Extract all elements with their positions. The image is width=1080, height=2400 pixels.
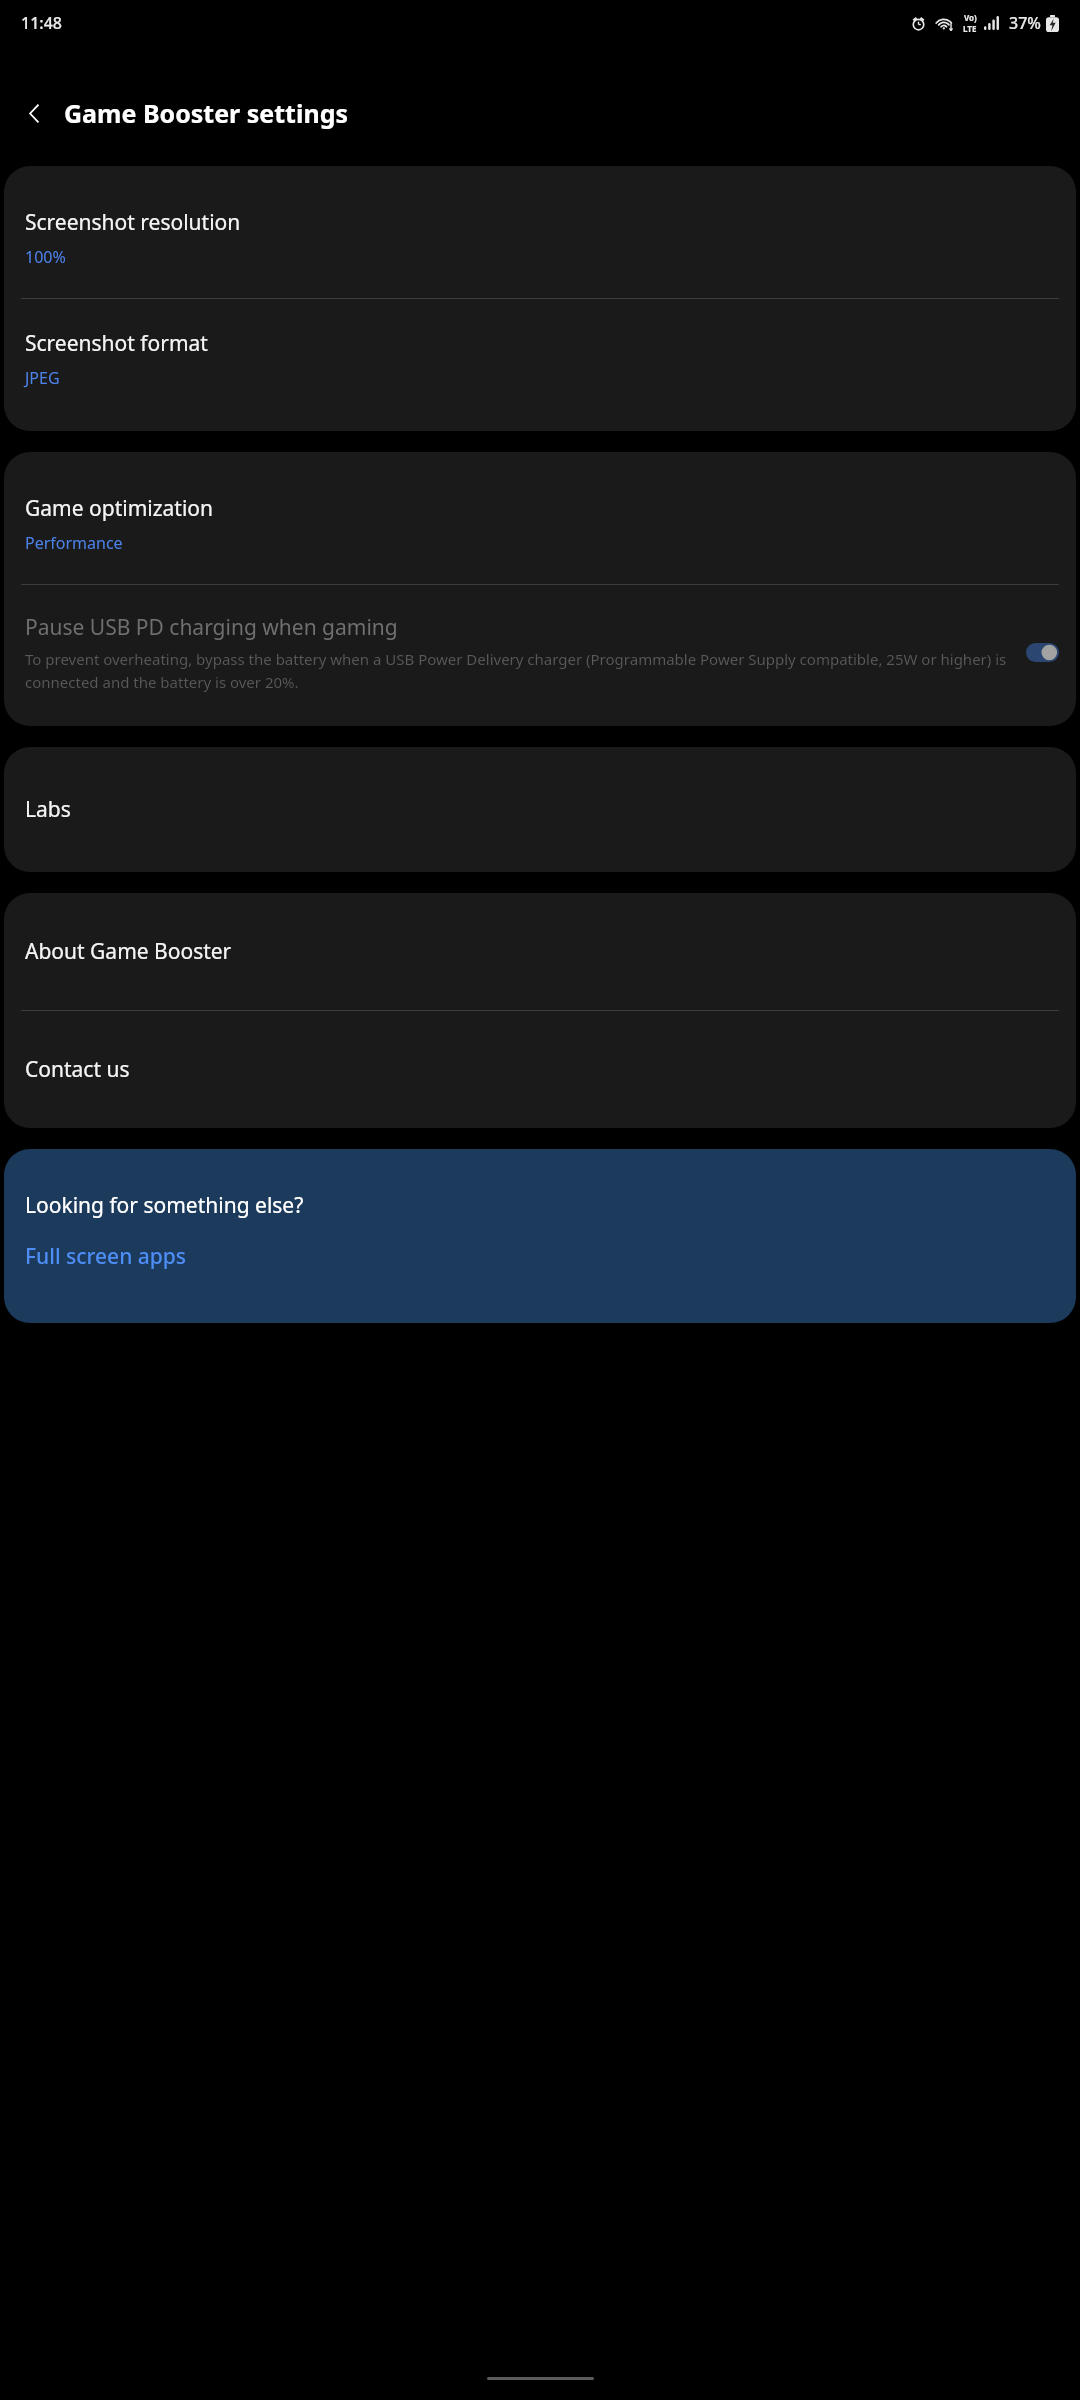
button[interactable]: Game optimization (4, 452, 1076, 584)
staticText: Performance (25, 532, 123, 554)
staticText: Game optimization (25, 494, 214, 523)
button[interactable]: Pause USB PD charging when gaming (4, 585, 1076, 726)
button[interactable]: Looking for something else? (4, 1149, 1076, 1323)
button[interactable]: Labs (4, 747, 1076, 872)
button[interactable]: About Game Booster (4, 893, 1076, 1010)
staticText: JPEG (25, 367, 60, 389)
staticText: Labs (25, 795, 71, 824)
staticText: About Game Booster (25, 937, 232, 966)
button[interactable]: Contact us (4, 1011, 1076, 1128)
staticText: Full screen apps (25, 1242, 187, 1271)
staticText: Vo) (964, 12, 977, 23)
button[interactable]: Screenshot format (4, 299, 1076, 431)
staticText: 11:48 (21, 12, 62, 34)
button[interactable]: Screenshot resolution (4, 166, 1076, 298)
button[interactable]: Pause USB PD charging when gaming (1026, 643, 1059, 662)
staticText: Screenshot format (25, 329, 208, 358)
staticText: 100% (25, 246, 66, 268)
staticText: 37% (1009, 12, 1041, 34)
staticText: Game Booster settings (64, 96, 349, 130)
staticText: LTE (963, 23, 977, 34)
staticText: Contact us (25, 1055, 130, 1084)
staticText: To prevent overheating, bypass the batte… (25, 649, 1012, 692)
button[interactable]: Back (12, 91, 56, 135)
staticText: Pause USB PD charging when gaming (25, 613, 398, 642)
staticText: Looking for something else? (25, 1191, 304, 1220)
staticText: Screenshot resolution (25, 208, 241, 237)
